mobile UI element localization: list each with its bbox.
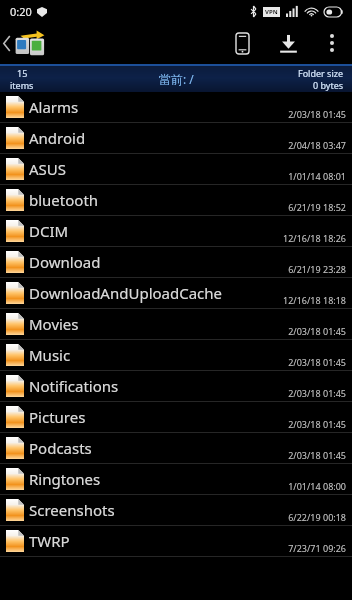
staticText: ASUS	[29, 159, 67, 179]
staticText: 當前: /	[159, 71, 194, 87]
staticText: 6/22/19 00:18	[288, 511, 346, 523]
staticText: DCIM	[29, 221, 69, 241]
staticText: 12/16/18 18:18	[283, 294, 346, 306]
button[interactable]: Movies	[0, 309, 352, 340]
staticText: Screenshots	[29, 500, 115, 520]
button[interactable]: Ringtones	[0, 464, 352, 495]
staticText: 1/01/14 08:00	[288, 480, 346, 492]
staticText: VPN	[265, 8, 278, 16]
button[interactable]: Download	[264, 22, 312, 64]
staticText: 7/23/71 09:26	[288, 542, 346, 554]
staticText: Movies	[29, 314, 79, 334]
staticText: 2/03/18 01:45	[288, 418, 346, 430]
staticText: 15	[17, 67, 28, 79]
staticText: 6/21/19 23:28	[288, 263, 346, 275]
staticText: Android	[29, 128, 86, 148]
button[interactable]: Pictures	[0, 402, 352, 433]
button[interactable]: Download	[0, 247, 352, 278]
button[interactable]: Podcasts	[0, 433, 352, 464]
staticText: Pictures	[29, 407, 86, 427]
button[interactable]: ASUS	[0, 154, 352, 185]
button[interactable]: Music	[0, 340, 352, 371]
staticText: 2/03/18 01:45	[288, 356, 346, 368]
button[interactable]: DCIM	[0, 216, 352, 247]
staticText: 2/03/18 01:45	[288, 387, 346, 399]
staticText: 2/03/18 01:45	[288, 108, 346, 120]
staticText: 2/04/18 03:47	[288, 139, 346, 151]
staticText: items	[10, 79, 34, 91]
staticText: DownloadAndUploadCache	[29, 283, 223, 303]
button[interactable]: TWRP	[0, 526, 352, 557]
staticText: bluetooth	[29, 190, 99, 210]
button[interactable]: DownloadAndUploadCache	[0, 278, 352, 309]
staticText: Ringtones	[29, 469, 101, 489]
staticText: 0:20	[10, 4, 32, 19]
staticText: Alarms	[29, 97, 79, 117]
staticText: Music	[29, 345, 71, 365]
button[interactable]: Notifications	[0, 371, 352, 402]
button[interactable]: Alarms	[0, 92, 352, 123]
button[interactable]: Screenshots	[0, 495, 352, 526]
staticText: Download	[29, 252, 101, 272]
staticText: 0 bytes	[313, 79, 344, 91]
button[interactable]: Navigate up	[0, 26, 51, 60]
staticText: 12/16/18 18:26	[283, 232, 346, 244]
button[interactable]: Android	[0, 123, 352, 154]
staticText: 2/03/18 01:45	[288, 325, 346, 337]
button[interactable]: More options	[312, 22, 352, 64]
staticText: TWRP	[29, 531, 70, 551]
staticText: 6/21/19 18:52	[288, 201, 346, 213]
button[interactable]: Local device	[220, 22, 264, 64]
button[interactable]: bluetooth	[0, 185, 352, 216]
staticText: Podcasts	[29, 438, 92, 458]
staticText: Folder size	[298, 67, 344, 79]
staticText: Notifications	[29, 376, 119, 396]
staticText: 2/03/18 01:45	[288, 449, 346, 461]
staticText: 1/01/14 08:01	[288, 170, 346, 182]
